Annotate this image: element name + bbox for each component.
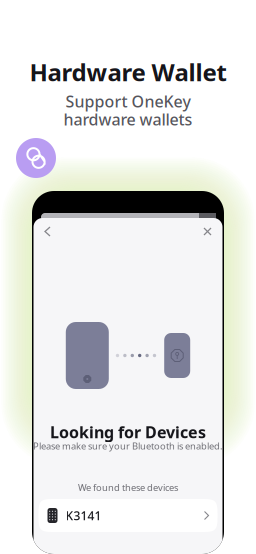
staticText: Support OneKey	[65, 91, 190, 112]
staticText: Please make sure your Bluetooth is enabl…	[33, 440, 223, 452]
staticText: hardware wallets	[63, 109, 192, 130]
button[interactable]: Close	[197, 221, 218, 242]
staticText: K3141	[65, 507, 101, 523]
staticText: Looking for Devices	[50, 421, 206, 443]
staticText: Hardware Wallet	[29, 56, 226, 88]
button[interactable]: K3141	[38, 499, 217, 532]
button[interactable]: OneKey	[16, 138, 56, 178]
staticText: We found these devices	[78, 481, 178, 494]
button[interactable]: Back	[38, 220, 57, 243]
